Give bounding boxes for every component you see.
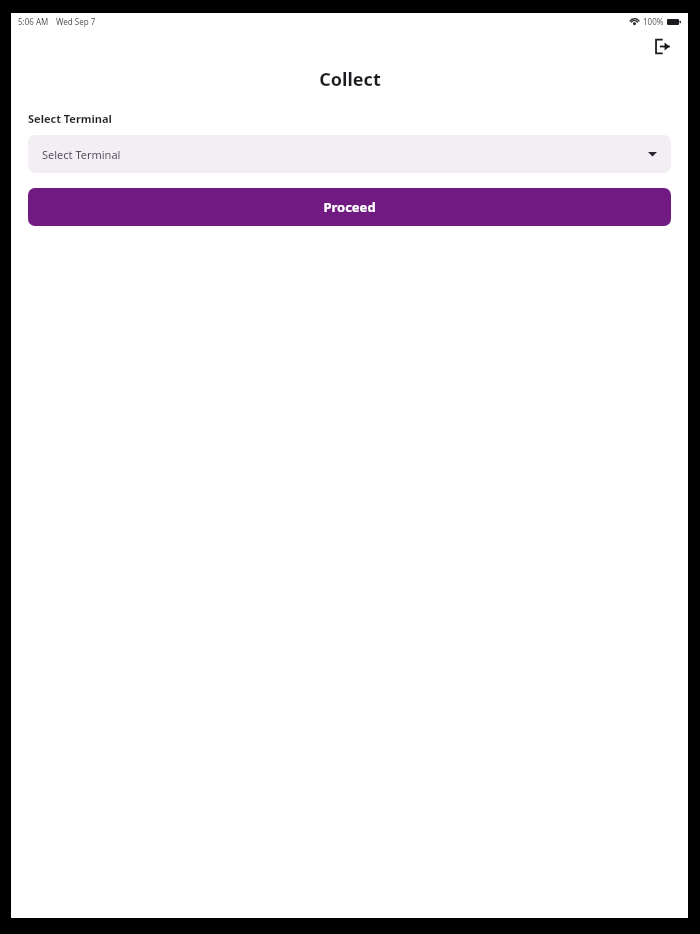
button[interactable]: Select Terminal: [28, 135, 671, 173]
button[interactable]: Proceed: [28, 188, 671, 226]
staticText: Wed Sep 7: [56, 16, 96, 27]
staticText: 100%: [643, 16, 664, 27]
staticText: 5:06 AM: [18, 16, 49, 27]
staticText: Select Terminal: [42, 147, 121, 162]
staticText: Collect: [319, 67, 381, 92]
staticText: Select Terminal: [28, 111, 112, 126]
staticText: Proceed: [323, 198, 376, 216]
button[interactable]: Logout: [649, 33, 675, 59]
